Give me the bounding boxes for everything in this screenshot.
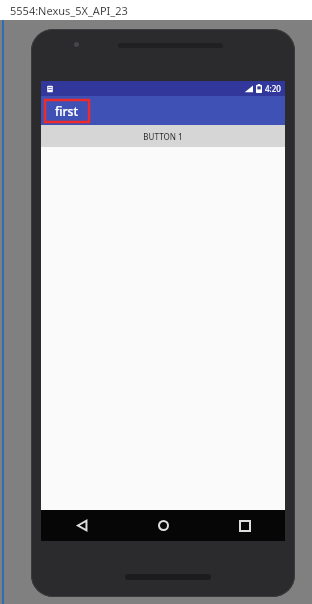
- staticText: BUTTON 1: [143, 131, 183, 142]
- staticText: first: [55, 103, 79, 119]
- staticText: 4:20: [265, 83, 281, 94]
- button[interactable]: Recent apps: [204, 510, 285, 541]
- button[interactable]: Back: [41, 510, 123, 541]
- staticText: 5554:Nexus_5X_API_23: [10, 3, 128, 18]
- button[interactable]: BUTTON 1: [41, 125, 285, 147]
- button[interactable]: Home: [123, 510, 204, 541]
